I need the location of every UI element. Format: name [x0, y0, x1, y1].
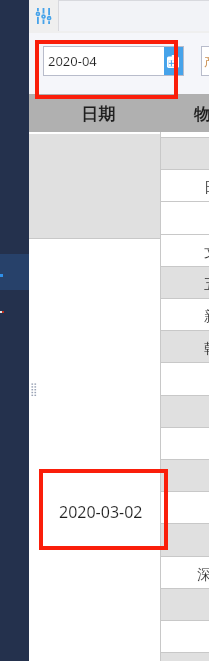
- button[interactable]: 五金: [161, 267, 209, 299]
- staticText: 产: [204, 54, 209, 69]
- staticText: 物: [194, 104, 209, 125]
- staticText: 深海鱼: [197, 566, 209, 584]
- staticText: 乾果类: [204, 340, 209, 358]
- staticText: 五金: [204, 276, 209, 294]
- button[interactable]: [161, 396, 209, 428]
- button[interactable]: [161, 460, 209, 492]
- staticText: 新鲜蔬菜: [204, 308, 209, 326]
- staticText: 文具: [204, 244, 209, 262]
- button[interactable]: 日用品: [161, 170, 209, 202]
- button[interactable]: [161, 589, 209, 621]
- button[interactable]: [161, 428, 209, 460]
- button[interactable]: 新鲜蔬菜: [161, 299, 209, 331]
- button[interactable]: [161, 524, 209, 556]
- button[interactable]: 深海鱼: [161, 557, 209, 589]
- staticText: 日用品: [204, 179, 209, 197]
- button[interactable]: Filter settings: [30, 1, 58, 31]
- button[interactable]: [161, 492, 209, 524]
- staticText: 日期: [81, 104, 115, 125]
- button[interactable]: Navigation item: [0, 254, 29, 290]
- button[interactable]: [29, 238, 161, 661]
- button[interactable]: 乾果类: [161, 331, 209, 363]
- button[interactable]: [58, 0, 209, 31]
- button[interactable]: [161, 621, 209, 653]
- button[interactable]: [161, 138, 209, 170]
- button[interactable]: Open date picker: [164, 47, 183, 75]
- staticText: 2020-03-02: [59, 501, 143, 523]
- staticText: 2020-04: [48, 52, 97, 70]
- button[interactable]: 文具: [161, 235, 209, 267]
